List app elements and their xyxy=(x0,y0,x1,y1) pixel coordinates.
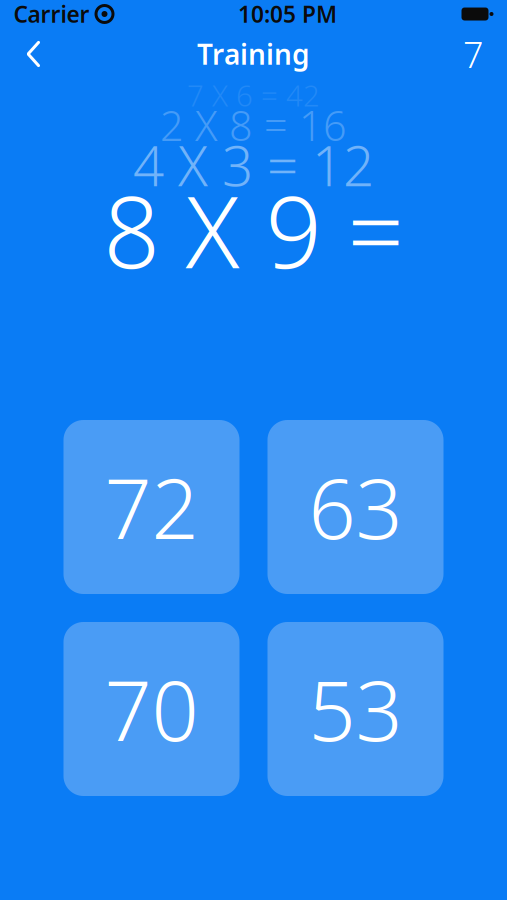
staticText: Training xyxy=(197,35,310,73)
staticText: Carrier xyxy=(13,0,89,29)
staticText: 10:05 PM xyxy=(238,0,337,29)
button[interactable]: 53 xyxy=(267,622,443,796)
staticText: 8 X 9 = xyxy=(103,164,403,295)
staticText: 4 X 3 = 12 xyxy=(133,129,374,201)
button[interactable]: 63 xyxy=(267,420,443,594)
staticText: 53 xyxy=(308,654,402,764)
staticText: 2 X 8 = 16 xyxy=(160,98,347,152)
button[interactable]: 70 xyxy=(63,622,239,796)
button[interactable]: Back xyxy=(7,31,59,77)
staticText: 70 xyxy=(104,654,198,764)
staticText: 63 xyxy=(308,452,402,562)
staticText: 7 X 6 = 42 xyxy=(187,75,320,114)
staticText: 72 xyxy=(104,452,198,562)
button[interactable]: Score 7 xyxy=(447,31,499,77)
staticText: 7 xyxy=(463,30,484,78)
button[interactable]: 72 xyxy=(63,420,239,594)
